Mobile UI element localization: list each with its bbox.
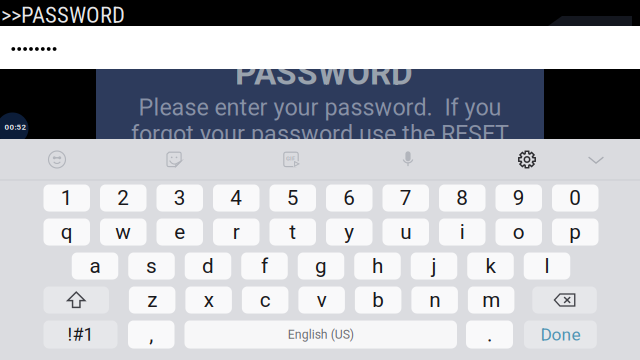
staticText: v xyxy=(317,288,327,312)
staticText: . xyxy=(487,322,492,347)
button[interactable]: o xyxy=(495,218,542,245)
staticText: x xyxy=(204,288,214,312)
button[interactable]: 8 xyxy=(439,184,485,211)
button[interactable]: !#1 xyxy=(43,320,117,348)
button[interactable]: 9 xyxy=(495,184,542,211)
button[interactable]: h xyxy=(354,252,401,279)
staticText: English (US) xyxy=(288,327,354,342)
staticText: j xyxy=(431,254,436,278)
staticText: 8 xyxy=(456,186,468,210)
staticText: g xyxy=(315,254,327,278)
staticText: m xyxy=(482,288,500,312)
staticText: w xyxy=(115,220,131,244)
button[interactable]: t xyxy=(269,218,316,245)
button[interactable]: Delete xyxy=(532,286,597,313)
staticText: l xyxy=(544,254,549,278)
button[interactable]: p xyxy=(552,218,598,245)
staticText: k xyxy=(485,254,495,278)
button[interactable]: u xyxy=(382,218,429,245)
button[interactable]: q xyxy=(43,218,90,245)
button[interactable]: Voice input xyxy=(388,141,428,177)
staticText: 3 xyxy=(174,186,186,210)
staticText: Done xyxy=(540,324,580,345)
staticText: 4 xyxy=(230,186,242,210)
button[interactable]: y xyxy=(326,218,372,245)
staticText: i xyxy=(460,220,465,244)
button[interactable]: d xyxy=(185,252,231,279)
staticText: 0 xyxy=(569,186,581,210)
button[interactable]: e xyxy=(156,218,203,245)
button[interactable]: 3 xyxy=(156,184,203,211)
staticText: 6 xyxy=(343,186,355,210)
button[interactable]: Keyboard settings xyxy=(507,141,547,177)
button[interactable]: k xyxy=(467,252,514,279)
staticText: s xyxy=(146,254,157,278)
staticText: !#1 xyxy=(67,324,93,345)
button[interactable]: a xyxy=(72,252,118,279)
staticText: h xyxy=(372,254,383,278)
staticText: PASSWORD button below. xyxy=(186,147,453,174)
button[interactable]: j xyxy=(411,252,457,279)
button[interactable]: Done xyxy=(524,320,597,348)
staticText: PASSWORD xyxy=(235,53,413,93)
staticText: a xyxy=(89,254,100,278)
button[interactable]: i xyxy=(439,218,485,245)
button[interactable]: w xyxy=(100,218,146,245)
staticText: y xyxy=(344,220,354,244)
button[interactable]: 2 xyxy=(100,184,146,211)
button[interactable]: Stickers xyxy=(154,141,194,177)
button[interactable]: v xyxy=(298,286,345,313)
staticText: p xyxy=(569,220,581,244)
button[interactable]: . xyxy=(466,320,513,348)
button[interactable]: b xyxy=(355,286,401,313)
staticText: e xyxy=(174,220,185,244)
button[interactable]: 7 xyxy=(382,184,429,211)
staticText: >>PASSWORD xyxy=(1,2,125,28)
staticText: z xyxy=(147,288,157,312)
button[interactable]: r xyxy=(213,218,259,245)
button[interactable]: 4 xyxy=(213,184,259,211)
button[interactable]: f xyxy=(241,252,288,279)
staticText: forgot your password use the RESET xyxy=(131,120,509,148)
button[interactable]: 5 xyxy=(269,184,316,211)
button[interactable]: English (US) xyxy=(184,320,457,348)
staticText: o xyxy=(513,220,525,244)
staticText: t xyxy=(289,220,296,244)
staticText: r xyxy=(233,220,240,244)
staticText: 2 xyxy=(117,186,129,210)
button[interactable]: Shift xyxy=(43,286,109,313)
button[interactable]: m xyxy=(468,286,514,313)
button[interactable]: , xyxy=(128,320,174,348)
staticText: 5 xyxy=(287,186,299,210)
staticText: c xyxy=(260,288,271,312)
button[interactable]: 1 xyxy=(43,184,90,211)
button[interactable]: Emoji xyxy=(37,141,77,177)
button[interactable]: s xyxy=(128,252,175,279)
button[interactable]: 6 xyxy=(326,184,372,211)
button[interactable]: c xyxy=(242,286,288,313)
staticText: b xyxy=(372,288,384,312)
button[interactable]: x xyxy=(185,286,232,313)
button[interactable]: GIF xyxy=(271,141,311,177)
button[interactable]: z xyxy=(129,286,175,313)
staticText: 00:52 xyxy=(4,122,26,132)
button[interactable]: l xyxy=(524,252,570,279)
staticText: u xyxy=(400,220,411,244)
staticText: n xyxy=(429,288,440,312)
staticText: 7 xyxy=(400,186,412,210)
button[interactable]: g xyxy=(298,252,344,279)
staticText: GIF xyxy=(286,155,295,162)
staticText: 1 xyxy=(61,186,73,210)
button[interactable]: Hide keyboard xyxy=(576,141,616,177)
button[interactable]: 0 xyxy=(552,184,598,211)
staticText: Please enter your password. If you xyxy=(138,94,501,121)
staticText: , xyxy=(149,322,153,347)
button[interactable]: Password xyxy=(0,26,640,69)
button[interactable]: n xyxy=(411,286,458,313)
staticText: q xyxy=(61,220,73,244)
staticText: d xyxy=(202,254,214,278)
staticText: f xyxy=(261,254,268,278)
staticText: 9 xyxy=(513,186,525,210)
